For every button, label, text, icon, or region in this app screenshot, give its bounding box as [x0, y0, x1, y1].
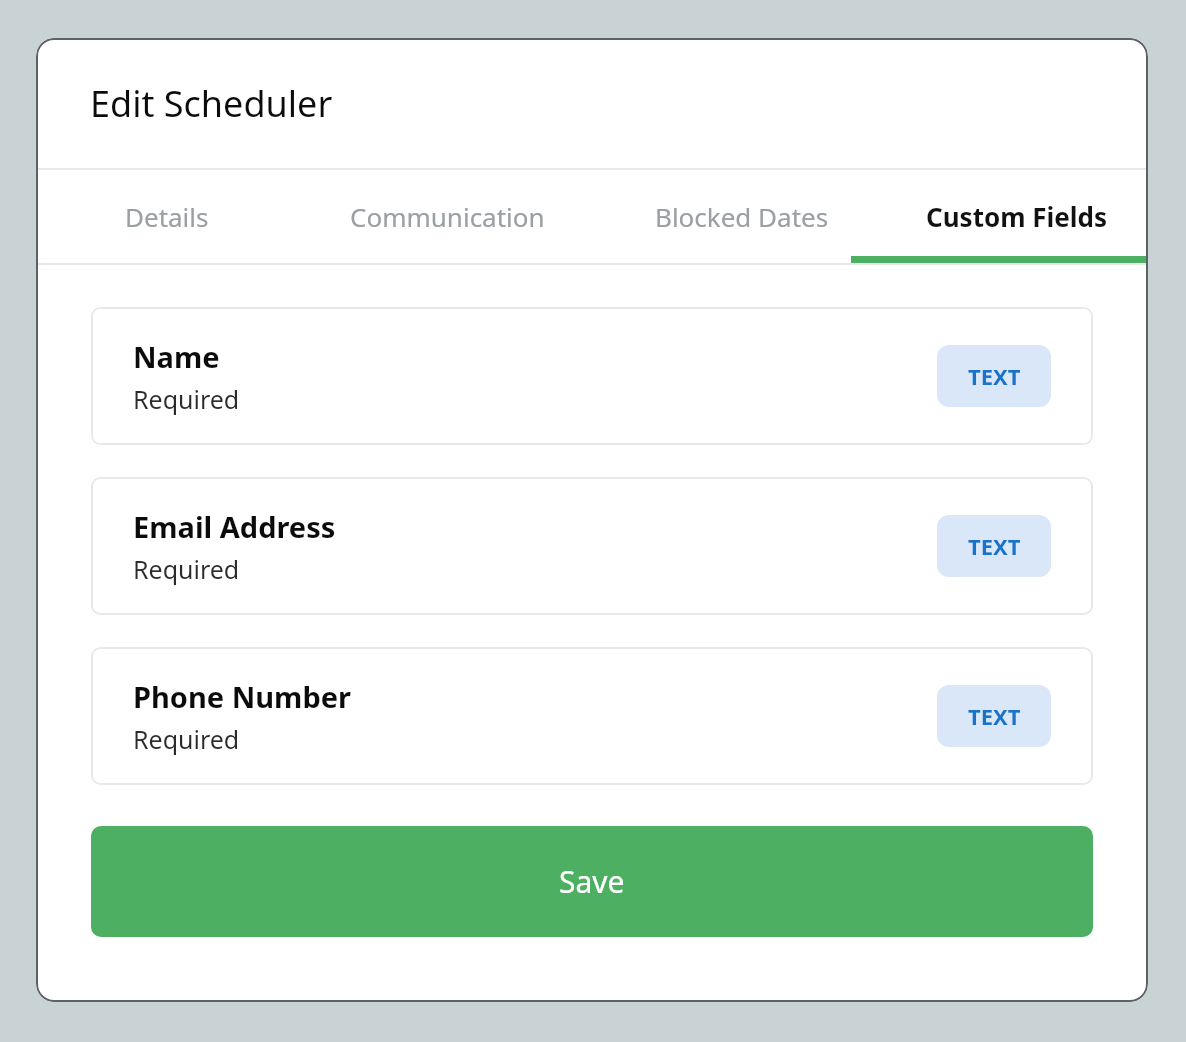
- staticText: Save: [559, 861, 625, 902]
- staticText: Blocked Dates: [655, 199, 829, 234]
- staticText: TEXT: [968, 361, 1021, 391]
- button[interactable]: TEXT: [937, 515, 1051, 577]
- button[interactable]: Email Address: [91, 477, 1093, 615]
- button[interactable]: Custom Fields: [886, 170, 1148, 263]
- staticText: Required: [133, 722, 240, 756]
- staticText: Email Address: [133, 507, 336, 546]
- staticText: Phone Number: [133, 677, 351, 716]
- button[interactable]: Save: [91, 826, 1093, 937]
- button[interactable]: Communication: [297, 170, 598, 263]
- staticText: Required: [133, 382, 240, 416]
- button[interactable]: TEXT: [937, 685, 1051, 747]
- staticText: TEXT: [968, 701, 1021, 731]
- staticText: Edit Scheduler: [90, 79, 333, 128]
- staticText: Required: [133, 552, 240, 586]
- button[interactable]: Phone Number: [91, 647, 1093, 785]
- button[interactable]: TEXT: [937, 345, 1051, 407]
- staticText: Communication: [350, 199, 545, 234]
- button[interactable]: Details: [36, 170, 297, 263]
- staticText: Details: [125, 199, 209, 234]
- button[interactable]: Name: [91, 307, 1093, 445]
- button[interactable]: Blocked Dates: [598, 170, 886, 263]
- staticText: Name: [133, 337, 220, 376]
- staticText: TEXT: [968, 531, 1021, 561]
- staticText: Custom Fields: [926, 199, 1108, 234]
